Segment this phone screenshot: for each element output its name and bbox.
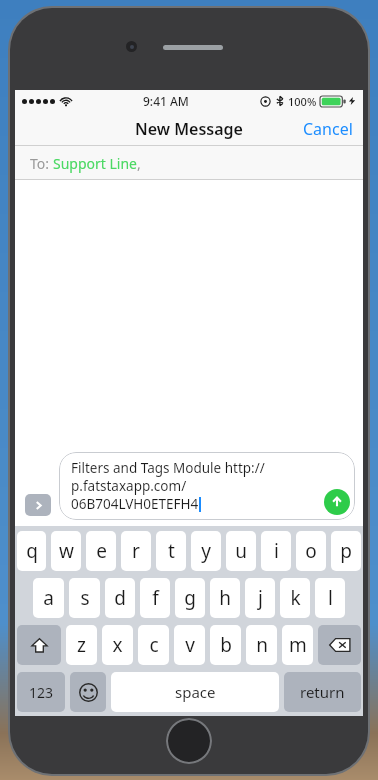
staticText: a [43,585,54,611]
staticText: k [290,585,301,611]
button[interactable]: b [210,625,241,665]
button[interactable]: t [156,531,186,571]
button[interactable]: l [315,578,345,618]
staticText: x [112,632,123,658]
staticText: j [258,585,263,611]
button[interactable]: Shift [17,625,61,665]
staticText: s [80,585,90,611]
button[interactable]: c [138,625,169,665]
button[interactable]: return [284,672,361,712]
staticText: i [274,538,279,564]
staticText: p.fatstaxapp.com/ [71,477,187,495]
button[interactable]: g [175,578,205,618]
button[interactable]: k [280,578,310,618]
staticText: 123 [29,683,54,702]
staticText: Filters and Tags Module http:// [71,459,265,477]
button[interactable]: Cancel [293,112,363,146]
button[interactable]: Apps [25,494,51,516]
staticText: w [59,538,74,564]
staticText: f [152,585,159,611]
button[interactable]: p [331,531,361,571]
staticText: t [168,538,175,564]
button[interactable]: o [296,531,326,571]
button[interactable]: w [51,531,81,571]
staticText: n [256,632,268,658]
button[interactable]: n [246,625,277,665]
staticText: v [185,632,195,658]
staticText: space [175,682,216,702]
button[interactable]: To: [15,146,363,180]
staticText: z [77,632,86,658]
staticText: e [96,538,107,564]
staticText: , [137,154,141,173]
button[interactable]: i [261,531,291,571]
button[interactable]: d [105,578,135,618]
button[interactable]: u [226,531,256,571]
staticText: p [340,538,352,564]
button[interactable]: v [174,625,205,665]
button[interactable]: Home [166,718,212,764]
button[interactable]: z [66,625,97,665]
button[interactable]: j [245,578,275,618]
staticText: h [219,585,231,611]
staticText: return [300,682,345,702]
staticText: u [235,538,247,564]
staticText: 9:41 AM [143,93,189,109]
button[interactable]: f [140,578,170,618]
button[interactable]: r [121,531,151,571]
staticText: d [114,585,126,611]
staticText: l [328,585,333,611]
button[interactable]: Send [324,489,350,515]
button[interactable]: s [69,578,100,618]
button[interactable]: Emoji [70,672,106,712]
staticText: m [289,632,307,658]
staticText: r [132,538,140,564]
staticText: o [305,538,317,564]
button[interactable]: x [102,625,133,665]
staticText: Cancel [303,118,353,140]
staticText: q [26,538,38,564]
button[interactable]: y [191,531,221,571]
button[interactable]: Filters and Tags Module http:// [59,452,355,520]
staticText: 100% [288,94,317,109]
button[interactable]: 123 [17,672,65,712]
button[interactable]: space [111,672,279,712]
button[interactable]: e [86,531,116,571]
staticText: c [149,632,159,658]
staticText: 06B704LVH0ETEFH4 [71,495,199,513]
button[interactable]: m [282,625,313,665]
button[interactable]: h [210,578,240,618]
button[interactable]: Backspace [318,625,361,665]
staticText: y [201,538,211,564]
staticText: To: [30,154,53,173]
button[interactable]: a [33,578,64,618]
staticText: Support Line [53,154,137,173]
staticText: g [184,585,196,611]
staticText: b [220,632,232,658]
staticText: New Message [135,118,243,140]
button[interactable]: q [17,531,46,571]
